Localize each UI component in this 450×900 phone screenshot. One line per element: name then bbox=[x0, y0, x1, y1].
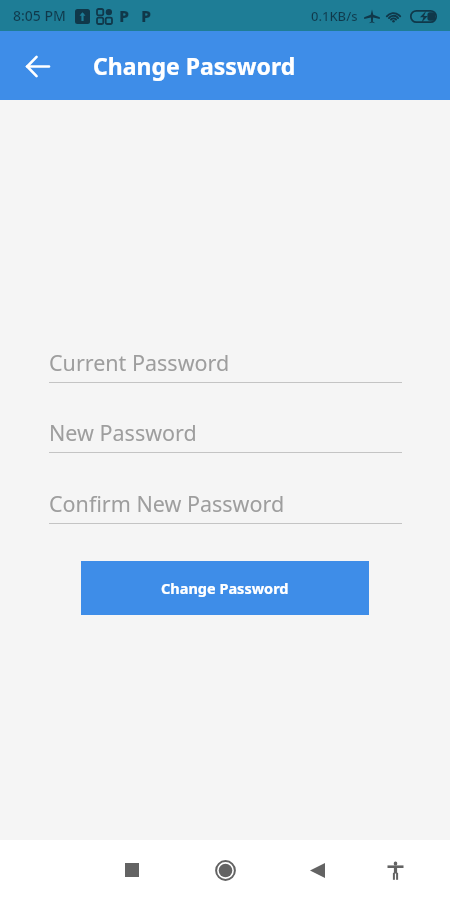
button[interactable]: Change Password bbox=[81, 561, 369, 615]
staticText: P bbox=[119, 5, 130, 27]
staticText: 8:05 PM bbox=[13, 6, 66, 25]
button[interactable]: Recents bbox=[105, 843, 159, 897]
staticText: P bbox=[141, 5, 152, 27]
staticText: 0.1KB/s bbox=[311, 7, 358, 25]
button[interactable]: New Password bbox=[49, 418, 402, 452]
staticText: Confirm New Password bbox=[49, 489, 285, 518]
button[interactable]: Back bbox=[15, 44, 59, 88]
button[interactable]: Home bbox=[198, 843, 252, 897]
staticText: Current Password bbox=[49, 348, 230, 377]
staticText: Change Password bbox=[93, 50, 296, 81]
staticText: Change Password bbox=[161, 578, 289, 598]
button[interactable]: Back bbox=[290, 843, 344, 897]
staticText: New Password bbox=[49, 418, 197, 447]
button[interactable]: Accessibility bbox=[368, 843, 422, 897]
button[interactable]: Confirm New Password bbox=[49, 489, 402, 523]
button[interactable]: Current Password bbox=[49, 348, 402, 382]
